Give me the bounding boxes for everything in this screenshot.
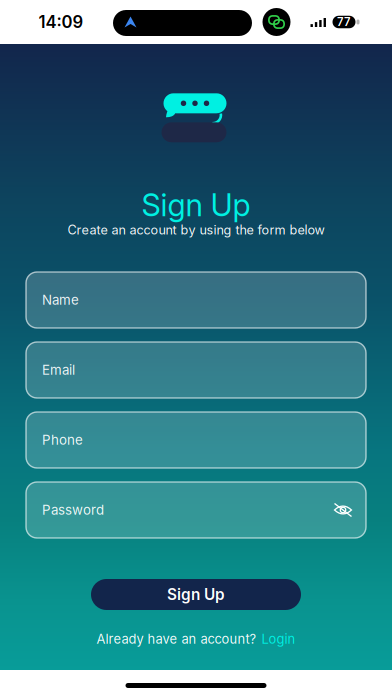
staticText: 14:09 xyxy=(38,12,83,32)
button[interactable]: Login xyxy=(261,631,295,647)
staticText: Phone xyxy=(42,432,83,448)
staticText: Email xyxy=(42,362,75,378)
button[interactable]: Name xyxy=(26,272,366,328)
staticText: Login xyxy=(261,631,295,647)
staticText: Already have an account? xyxy=(96,631,256,647)
staticText: Sign Up xyxy=(167,585,225,604)
staticText: Name xyxy=(42,292,79,308)
button[interactable]: Sign Up xyxy=(91,579,301,610)
button[interactable]: Phone xyxy=(26,412,366,468)
staticText: Create an account by using the form belo… xyxy=(67,222,324,238)
button[interactable]: Password xyxy=(26,482,366,538)
staticText: 77 xyxy=(337,15,351,29)
button[interactable]: Email xyxy=(26,342,366,398)
staticText: Sign Up xyxy=(141,186,250,223)
staticText: Password xyxy=(42,502,104,518)
